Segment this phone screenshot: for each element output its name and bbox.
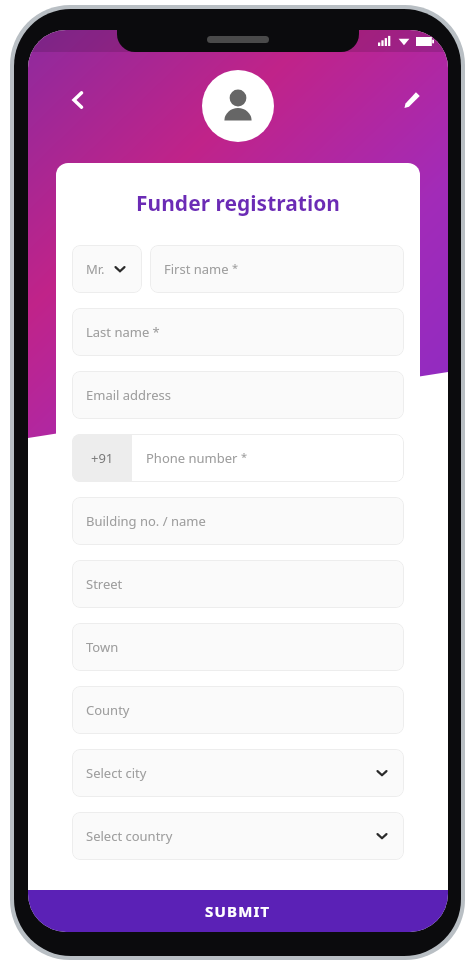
staticText: Last name * xyxy=(86,323,160,341)
button[interactable]: County xyxy=(72,686,404,734)
staticText: SUBMIT xyxy=(205,901,271,921)
button[interactable]: Edit xyxy=(392,80,432,120)
button[interactable]: Town xyxy=(72,623,404,671)
button[interactable]: Mr. xyxy=(72,245,142,293)
button[interactable]: Last name * xyxy=(72,308,404,356)
staticText: Street xyxy=(86,575,123,593)
button[interactable]: Street xyxy=(72,560,404,608)
staticText: Phone number xyxy=(146,449,238,467)
button[interactable]: +91 xyxy=(72,434,404,482)
button[interactable]: SUBMIT xyxy=(28,890,448,932)
button[interactable]: Profile photo xyxy=(202,70,274,142)
button[interactable]: First name xyxy=(150,245,404,293)
staticText: First name xyxy=(164,260,229,278)
staticText: * xyxy=(241,449,248,464)
button[interactable]: Select city xyxy=(72,749,404,797)
staticText: Town xyxy=(86,638,119,656)
button[interactable]: Select country xyxy=(72,812,404,860)
staticText: Email address xyxy=(86,386,171,404)
button[interactable]: Email address xyxy=(72,371,404,419)
button[interactable]: Back xyxy=(58,80,98,120)
staticText: Select city xyxy=(86,764,147,782)
staticText: Funder registration xyxy=(72,189,404,218)
staticText: County xyxy=(86,701,130,719)
staticText: Mr. xyxy=(86,260,105,278)
staticText: Building no. / name xyxy=(86,512,206,530)
button[interactable]: Building no. / name xyxy=(72,497,404,545)
staticText: +91 xyxy=(91,449,114,467)
staticText: Select country xyxy=(86,827,173,845)
staticText: * xyxy=(232,260,239,275)
